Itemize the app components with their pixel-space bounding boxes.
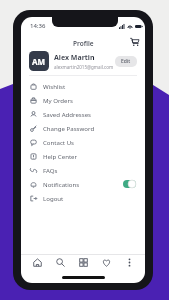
button[interactable]: grid (76, 255, 90, 269)
button[interactable]: dots (122, 255, 136, 269)
button[interactable]: Help Center (21, 149, 145, 163)
button[interactable]: Contact Us (21, 135, 145, 149)
button[interactable]: Notifications toggle (123, 180, 136, 188)
staticText: Edit (121, 58, 131, 65)
button[interactable]: heart (99, 255, 113, 269)
button[interactable]: Edit (115, 56, 137, 67)
button[interactable]: Change Password (21, 121, 145, 135)
button[interactable]: home (30, 255, 44, 269)
staticText: AM (32, 56, 46, 67)
button[interactable]: search (53, 255, 67, 269)
staticText: Alex Martin (54, 53, 95, 63)
staticText: My Orders (43, 96, 136, 104)
button[interactable]: Shopping cart (128, 35, 141, 48)
staticText: 14:36 (30, 22, 46, 30)
button[interactable]: Logout (21, 191, 145, 205)
staticText: FAQs (43, 166, 136, 174)
staticText: Change Password (43, 124, 136, 132)
staticText: Contact Us (43, 138, 136, 146)
staticText: alexmartin2015@gmail.com (54, 64, 114, 70)
button[interactable]: Notifications (21, 177, 145, 191)
staticText: Saved Addresses (43, 110, 136, 118)
button[interactable]: My Orders (21, 93, 145, 107)
button[interactable]: Wishlist (21, 79, 145, 93)
staticText: Help Center (43, 152, 136, 160)
staticText: Logout (43, 194, 136, 202)
button[interactable]: Saved Addresses (21, 107, 145, 121)
staticText: Profile (73, 39, 94, 48)
button[interactable]: FAQs (21, 163, 145, 177)
staticText: Notifications (43, 180, 123, 188)
staticText: Wishlist (43, 82, 136, 90)
